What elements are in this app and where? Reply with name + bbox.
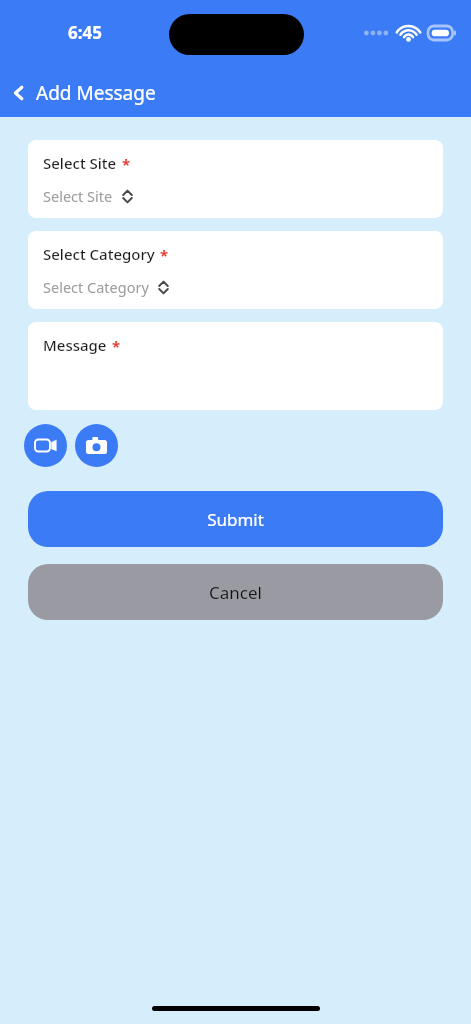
staticText: Message (43, 335, 107, 355)
button[interactable]: Cancel (28, 564, 443, 620)
staticText: 6:45 (68, 21, 102, 44)
staticText: Add Message (36, 80, 156, 106)
button[interactable]: Submit (28, 491, 443, 547)
staticText: * (112, 336, 121, 356)
button[interactable]: Take photo (75, 424, 118, 467)
button[interactable]: Record video (24, 424, 67, 467)
other: Back (10, 84, 28, 102)
staticText: Select Category (43, 244, 155, 264)
button[interactable]: Message (28, 322, 443, 410)
button[interactable]: Back (0, 69, 168, 117)
staticText: Submit (207, 508, 264, 531)
staticText: Select Site (43, 186, 113, 206)
staticText: * (160, 245, 169, 265)
button[interactable]: Select Site (28, 140, 443, 218)
staticText: * (122, 154, 131, 174)
staticText: Select Category (43, 277, 149, 297)
staticText: Select Site (43, 153, 117, 173)
staticText: Cancel (209, 581, 262, 604)
button[interactable]: Select Category (28, 231, 443, 309)
